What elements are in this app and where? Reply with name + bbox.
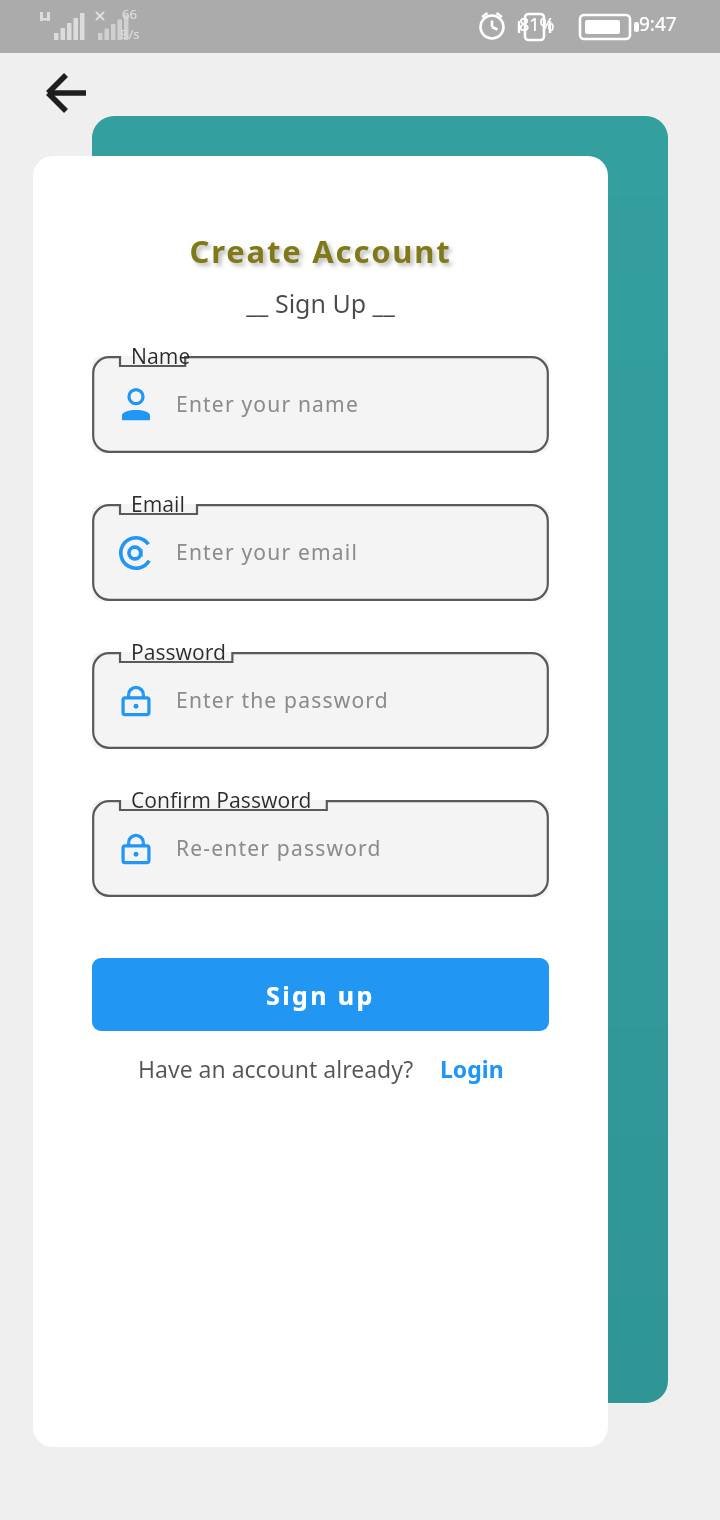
staticText: Password — [131, 638, 226, 667]
button[interactable]: Re-enter password — [92, 800, 549, 897]
staticText: Enter your email — [176, 538, 359, 567]
staticText: Enter the password — [176, 686, 389, 715]
button[interactable]: Enter your name — [92, 356, 549, 453]
staticText: __ Sign Up __ — [33, 286, 608, 320]
staticText: Sign up — [266, 978, 375, 1012]
staticText: Name — [131, 342, 191, 371]
staticText: Enter your name — [176, 390, 359, 419]
button[interactable]: Login — [440, 1053, 504, 1084]
button[interactable]: Enter the password — [92, 652, 549, 749]
staticText: Re-enter password — [176, 834, 382, 863]
button[interactable]: Sign up — [92, 958, 549, 1031]
staticText: B/s — [120, 25, 140, 43]
staticText: Email — [131, 490, 185, 519]
staticText: 66 — [122, 5, 137, 23]
button[interactable]: Enter your email — [92, 504, 549, 601]
button[interactable]: Back — [42, 68, 92, 118]
staticText: Login — [440, 1053, 504, 1084]
staticText: Create Account — [33, 230, 608, 272]
staticText: Have an account already? — [138, 1053, 414, 1084]
staticText: 81% — [519, 12, 555, 37]
staticText: 9:47 — [639, 11, 677, 37]
staticText: Confirm Password — [131, 786, 312, 815]
